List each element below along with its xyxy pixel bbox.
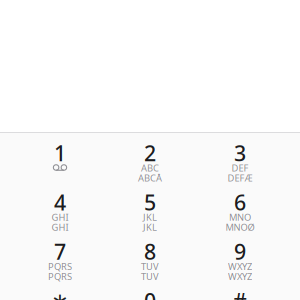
staticText: 4 xyxy=(54,188,66,216)
button[interactable]: 4 xyxy=(15,192,105,241)
staticText: DEFÆ xyxy=(227,172,252,184)
staticText: 1 xyxy=(54,139,66,167)
button[interactable]: ∗ xyxy=(15,291,105,300)
staticText: TUV xyxy=(141,260,159,273)
staticText: MNO xyxy=(229,211,251,223)
button[interactable]: 3 xyxy=(195,143,285,192)
staticText: 9 xyxy=(234,237,246,265)
staticText: 6 xyxy=(234,188,246,216)
staticText: JKL xyxy=(143,211,157,223)
button[interactable]: 8 xyxy=(105,241,195,290)
staticText: GHI xyxy=(51,221,68,233)
staticText: ABCÅ xyxy=(138,172,162,184)
button[interactable]: 2 xyxy=(105,143,195,192)
button[interactable]: 5 xyxy=(105,192,195,241)
staticText: MNOØ xyxy=(225,221,254,233)
button[interactable]: 9 xyxy=(195,241,285,290)
staticText: WXYZ xyxy=(228,260,252,273)
staticText: ABC xyxy=(141,162,159,174)
staticText: WXYZ xyxy=(228,270,252,283)
staticText: 3 xyxy=(234,139,246,167)
staticText: JKL xyxy=(143,221,157,233)
staticText: 7 xyxy=(54,237,66,265)
button[interactable]: 1 xyxy=(15,143,105,192)
staticText: 5 xyxy=(144,188,156,216)
button[interactable]: 7 xyxy=(15,241,105,290)
button[interactable]: 0 xyxy=(105,291,195,300)
staticText: 2 xyxy=(144,139,156,167)
staticText: DEF xyxy=(231,162,248,174)
staticText: TUV xyxy=(141,270,159,283)
button[interactable]: 6 xyxy=(195,192,285,241)
staticText: # xyxy=(233,286,247,300)
staticText: ∗ xyxy=(51,288,69,300)
staticText: PQRS xyxy=(48,270,72,283)
staticText: GHI xyxy=(51,211,68,223)
staticText: 0 xyxy=(144,286,156,300)
staticText: 8 xyxy=(144,237,156,265)
staticText: PQRS xyxy=(48,260,72,273)
button[interactable]: # xyxy=(195,291,285,300)
